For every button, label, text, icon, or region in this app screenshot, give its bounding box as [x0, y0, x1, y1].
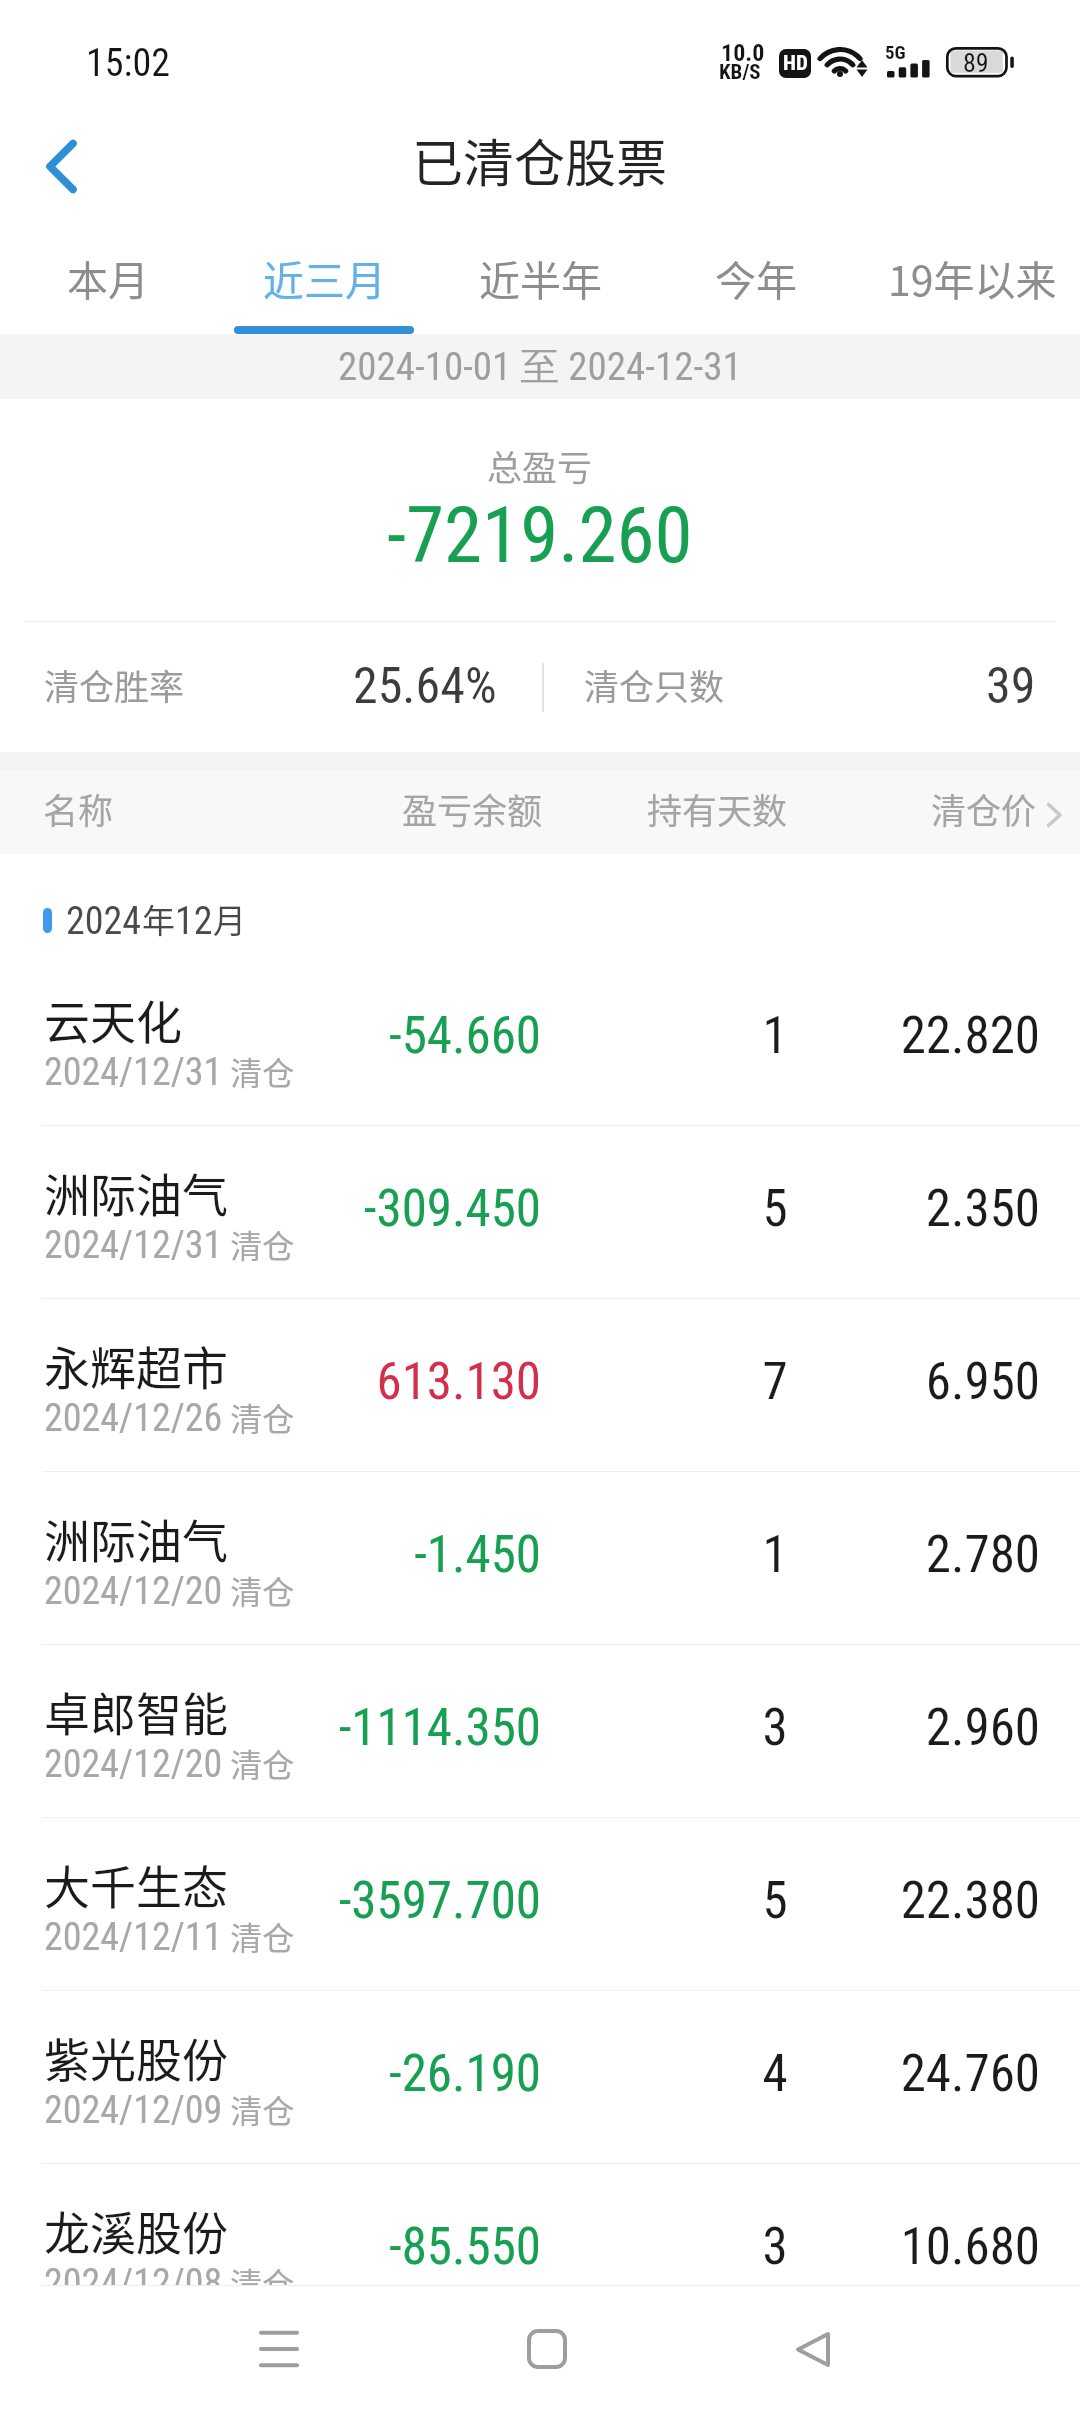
- staticText: HD: [783, 51, 808, 76]
- staticText: 25.64%: [353, 657, 497, 716]
- staticText: 洲际油气: [44, 1159, 228, 1226]
- staticText: 清仓: [223, 1567, 295, 1613]
- staticText: 清仓: [223, 2086, 295, 2132]
- staticText: 年: [142, 895, 175, 943]
- staticText: 清仓: [223, 1740, 295, 1786]
- button[interactable]: 近半年: [432, 230, 648, 334]
- staticText: 5: [655, 1179, 895, 1239]
- staticText: 永辉超市: [44, 1332, 228, 1399]
- staticText: 1: [655, 1525, 895, 1585]
- staticText: 6.950: [0, 1352, 1040, 1412]
- staticText: 已清仓股票: [412, 123, 668, 197]
- staticText: 3: [655, 2217, 895, 2277]
- button[interactable]: Back: [0, 104, 140, 230]
- staticText: 清仓: [223, 1394, 295, 1440]
- staticText: 名称: [43, 783, 114, 834]
- staticText: 7: [655, 1352, 895, 1412]
- staticText: -26.190: [0, 2044, 541, 2104]
- button[interactable]: Recent apps: [189, 2286, 369, 2412]
- staticText: -1114.350: [0, 1698, 541, 1758]
- staticText: 2.960: [0, 1698, 1040, 1758]
- staticText: -1.450: [0, 1525, 541, 1585]
- staticText: -7219.260: [387, 491, 693, 581]
- staticText: 22.820: [0, 1006, 1040, 1066]
- staticText: 2.780: [0, 1525, 1040, 1585]
- staticText: 2024/12/20: [44, 1742, 223, 1787]
- staticText: 2024/12/31: [44, 1050, 223, 1095]
- staticText: 19年以来: [888, 248, 1057, 307]
- staticText: 清仓: [223, 1221, 295, 1267]
- staticText: 清仓胜率: [44, 659, 185, 710]
- staticText: 龙溪股份: [44, 2197, 228, 2264]
- staticText: 云天化: [44, 986, 182, 1053]
- staticText: 12: [175, 899, 213, 944]
- staticText: 卓郎智能: [44, 1678, 228, 1745]
- staticText: 2024: [66, 899, 142, 944]
- staticText: 2024/12/08: [44, 2261, 223, 2286]
- staticText: 清仓: [223, 1913, 295, 1959]
- staticText: 2024/12/09: [44, 2088, 223, 2133]
- button[interactable]: Home: [457, 2286, 637, 2412]
- button[interactable]: 云天化: [0, 953, 1080, 1126]
- staticText: 15:02: [86, 41, 170, 86]
- staticText: 2.350: [0, 1179, 1040, 1239]
- staticText: 持有天数: [647, 783, 788, 834]
- button[interactable]: 本月: [0, 230, 216, 334]
- staticText: 盈亏余额: [402, 783, 543, 834]
- staticText: -3597.700: [0, 1871, 541, 1931]
- staticText: 总盈亏: [487, 440, 593, 491]
- staticText: 月: [213, 895, 246, 943]
- button[interactable]: 紫光股份: [0, 1991, 1080, 2164]
- staticText: 1: [655, 1006, 895, 1066]
- button[interactable]: 永辉超市: [0, 1299, 1080, 1472]
- staticText: 2024/12/26: [44, 1396, 223, 1441]
- button[interactable]: 洲际油气: [0, 1472, 1080, 1645]
- staticText: 10.0: [721, 39, 765, 67]
- button[interactable]: 卓郎智能: [0, 1645, 1080, 1818]
- staticText: 近三月: [263, 248, 386, 307]
- staticText: 613.130: [0, 1352, 541, 1412]
- staticText: 清仓: [223, 1048, 295, 1094]
- staticText: 大千生态: [44, 1851, 228, 1918]
- button[interactable]: Back: [723, 2286, 903, 2412]
- staticText: 洲际油气: [44, 1505, 228, 1572]
- staticText: 39: [986, 657, 1036, 716]
- button[interactable]: 大千生态: [0, 1818, 1080, 1991]
- staticText: 清仓只数: [584, 659, 725, 710]
- staticText: 89: [963, 48, 989, 78]
- staticText: KB/S: [719, 60, 761, 85]
- staticText: 3: [655, 1698, 895, 1758]
- staticText: 5: [655, 1871, 895, 1931]
- staticText: -309.450: [0, 1179, 541, 1239]
- staticText: 2024/12/11: [44, 1915, 223, 1960]
- staticText: 今年: [715, 248, 797, 307]
- staticText: 清仓: [223, 2259, 295, 2286]
- staticText: 紫光股份: [44, 2024, 228, 2091]
- button[interactable]: 今年: [648, 230, 864, 334]
- button[interactable]: 近三月: [216, 230, 432, 334]
- staticText: 2024/12/31: [44, 1223, 223, 1268]
- staticText: 2024/12/20: [44, 1569, 223, 1614]
- staticText: 22.380: [0, 1871, 1040, 1931]
- staticText: 4: [655, 2044, 895, 2104]
- staticText: 近半年: [479, 248, 602, 307]
- button[interactable]: 龙溪股份: [0, 2164, 1080, 2286]
- staticText: 5G: [885, 41, 906, 63]
- staticText: 10.680: [0, 2217, 1040, 2277]
- staticText: 本月: [67, 248, 149, 307]
- staticText: 2024-10-01 至 2024-12-31: [338, 342, 742, 391]
- staticText: 清仓价: [931, 783, 1037, 834]
- button[interactable]: 19年以来: [864, 230, 1080, 334]
- staticText: -54.660: [0, 1006, 541, 1066]
- staticText: 24.760: [0, 2044, 1040, 2104]
- button[interactable]: 洲际油气: [0, 1126, 1080, 1299]
- staticText: -85.550: [0, 2217, 541, 2277]
